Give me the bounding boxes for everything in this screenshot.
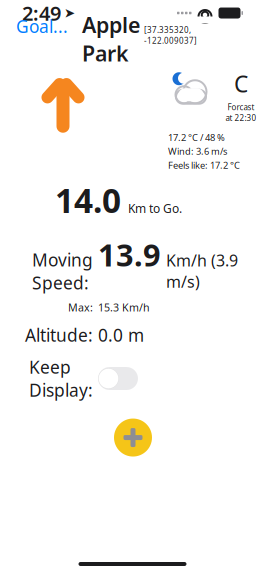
staticText: 0.0 m xyxy=(98,323,144,346)
staticText: C xyxy=(234,69,248,99)
staticText: 14.0 xyxy=(55,178,121,222)
staticText: Apple Park xyxy=(82,11,140,67)
staticText: 17.2 °C / 48 % xyxy=(168,131,225,143)
staticText: 15.3 Km/h xyxy=(98,300,150,314)
staticText: Goal... xyxy=(16,15,68,38)
staticText: Feels like: 17.2 °C xyxy=(168,159,240,171)
staticText: Km to Go. xyxy=(128,200,182,216)
staticText: [37.335320, -122.009037] xyxy=(144,25,197,46)
button[interactable]: Goal... xyxy=(16,11,68,42)
staticText: at 22:30 xyxy=(225,112,256,123)
staticText: ➤ xyxy=(64,5,75,20)
button[interactable]: Keep Display xyxy=(98,367,138,390)
staticText: Km/h (3.9 m/s) xyxy=(166,250,238,292)
staticText: Altitude: xyxy=(25,323,93,346)
staticText: Keep Display: xyxy=(29,355,93,401)
staticText: Wind: 3.6 m/s xyxy=(168,145,227,157)
staticText: Forcast xyxy=(227,102,254,112)
staticText: 2:49 xyxy=(22,0,61,26)
button[interactable]: Add xyxy=(111,415,155,459)
staticText: Moving Speed: xyxy=(32,248,93,294)
staticText: 13.9 xyxy=(98,234,161,275)
staticText: Max: xyxy=(68,300,93,314)
